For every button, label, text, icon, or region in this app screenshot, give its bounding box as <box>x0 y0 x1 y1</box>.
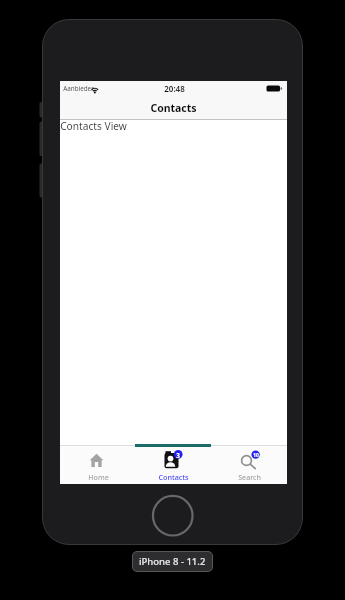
staticText: Contacts View <box>60 119 127 133</box>
staticText: 3 <box>176 451 180 459</box>
button[interactable]: Contacts <box>135 446 211 484</box>
staticText: Aanbieder <box>63 84 94 93</box>
button[interactable]: Home <box>60 446 136 484</box>
staticText: Contacts <box>158 472 189 482</box>
button[interactable]: Search <box>211 446 287 484</box>
staticText: 10 <box>253 452 259 459</box>
staticText: iPhone 8 - 11.2 <box>139 555 206 568</box>
staticText: Home <box>88 472 109 482</box>
staticText: Search <box>238 472 261 482</box>
staticText: Contacts <box>150 101 197 114</box>
staticText: 20:48 <box>164 83 185 94</box>
